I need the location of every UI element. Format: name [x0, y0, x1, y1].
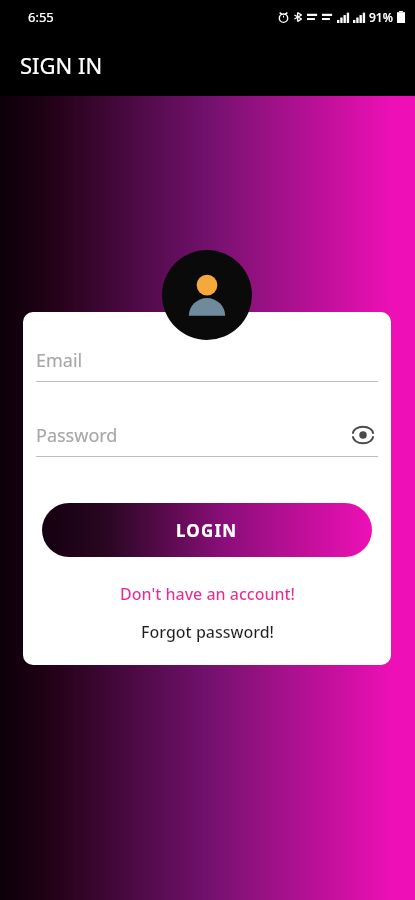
staticText: LOGIN	[176, 519, 238, 542]
button[interactable]: Show password	[348, 420, 378, 450]
button[interactable]: Forgot password!	[36, 621, 378, 643]
staticText: Email	[36, 348, 83, 373]
staticText: SIGN IN	[20, 50, 103, 80]
staticText: Forgot password!	[141, 621, 274, 643]
staticText: 6:55	[28, 8, 54, 26]
other: Profile avatar	[162, 250, 252, 340]
button[interactable]: Don't have an account!	[36, 583, 378, 605]
staticText: Don't have an account!	[120, 583, 295, 605]
staticText: 91%	[369, 9, 393, 25]
button[interactable]: LOGIN	[42, 503, 372, 557]
button[interactable]: Email	[36, 345, 378, 375]
button[interactable]: Password	[36, 420, 378, 450]
staticText: Password	[36, 423, 118, 448]
